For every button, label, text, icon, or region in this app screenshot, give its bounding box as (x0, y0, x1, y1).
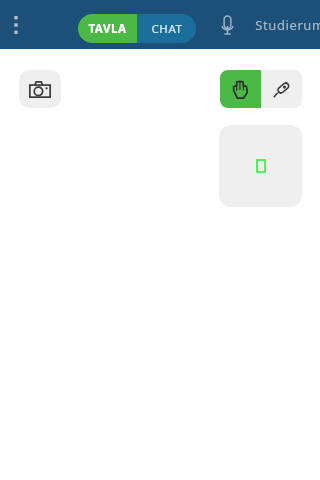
button[interactable]: Take photo (19, 70, 61, 108)
staticText: TAVLA (88, 21, 127, 37)
button[interactable]: Microphone (212, 12, 242, 38)
staticText: Studierum (255, 16, 320, 34)
button[interactable]: Colour swatch (219, 125, 302, 207)
button[interactable]: Marker tool (261, 70, 302, 108)
button[interactable]: TAVLA (78, 14, 137, 43)
staticText: CHAT (151, 21, 183, 37)
button[interactable]: Pan tool (220, 70, 261, 108)
button[interactable]: CHAT (137, 14, 196, 43)
button[interactable]: More options (2, 11, 30, 39)
